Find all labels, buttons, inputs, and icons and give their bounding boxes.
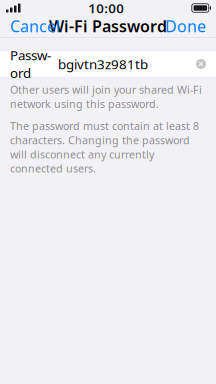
button[interactable]: Done xyxy=(155,16,216,36)
staticText: Other users will join your shared Wi-Fi … xyxy=(10,82,202,111)
button[interactable]: Password xyxy=(0,51,216,76)
staticText: 10:00 xyxy=(88,0,124,17)
staticText: bgivtn3z981tb xyxy=(58,55,148,73)
staticText: Cancel xyxy=(10,15,60,37)
staticText: Wi-Fi Password xyxy=(49,15,167,37)
staticText: The password must contain at least 8 cha… xyxy=(10,119,199,175)
staticText: ✕ xyxy=(197,59,204,69)
staticText: Password xyxy=(10,46,51,82)
staticText: Done xyxy=(165,15,206,37)
button[interactable]: Cancel xyxy=(0,16,70,36)
